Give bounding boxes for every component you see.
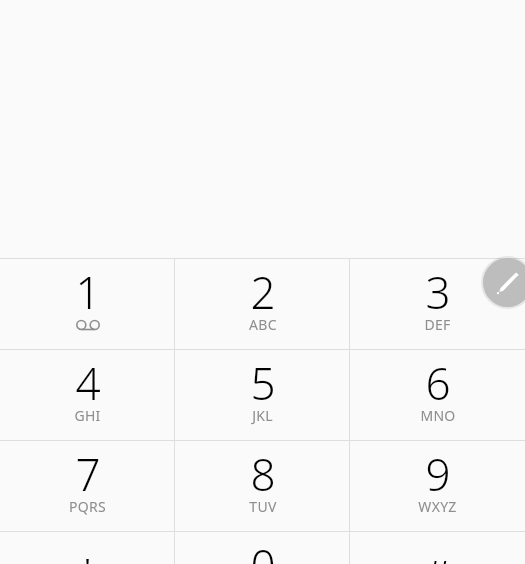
staticText: GHI: [74, 406, 101, 425]
staticText: 7: [75, 444, 101, 504]
staticText: ABC: [249, 315, 277, 334]
button[interactable]: 0: [175, 532, 350, 564]
staticText: 9: [425, 444, 451, 504]
button[interactable]: 2: [175, 259, 350, 349]
staticText: *: [75, 546, 100, 564]
button[interactable]: Edit: [483, 258, 525, 307]
staticText: 5: [250, 353, 276, 413]
button[interactable]: 7: [0, 441, 175, 531]
button[interactable]: 1: [0, 259, 175, 349]
staticText: 0: [250, 535, 276, 564]
staticText: 8: [250, 444, 276, 504]
staticText: 1: [75, 262, 101, 322]
staticText: 6: [425, 353, 451, 413]
staticText: JKL: [252, 406, 273, 425]
staticText: 4: [75, 353, 101, 413]
staticText: TUV: [249, 497, 277, 516]
button[interactable]: 8: [175, 441, 350, 531]
button[interactable]: 4: [0, 350, 175, 440]
staticText: MNO: [420, 406, 456, 425]
button[interactable]: 6: [350, 350, 525, 440]
staticText: 2: [250, 262, 276, 322]
staticText: 3: [425, 262, 451, 322]
staticText: WXYZ: [418, 497, 457, 516]
button[interactable]: *: [0, 532, 175, 564]
staticText: DEF: [424, 315, 451, 334]
staticText: PQRS: [69, 497, 106, 516]
staticText: #: [423, 546, 452, 564]
button[interactable]: 3: [350, 259, 525, 349]
button[interactable]: 5: [175, 350, 350, 440]
button[interactable]: #: [350, 532, 525, 564]
button[interactable]: 9: [350, 441, 525, 531]
